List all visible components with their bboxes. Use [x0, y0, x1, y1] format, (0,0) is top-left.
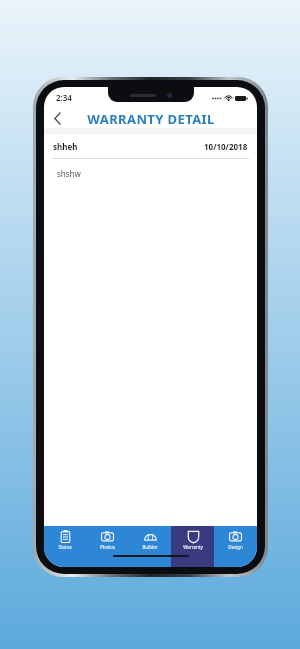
button[interactable]: Back [44, 108, 70, 128]
staticText: Warranty [183, 544, 203, 550]
button[interactable]: Builder [128, 526, 171, 553]
button[interactable]: Warranty [171, 526, 214, 553]
staticText: 2:34 [56, 92, 72, 103]
staticText: shheh [53, 141, 78, 152]
staticText: Design [228, 544, 243, 550]
staticText: Status [58, 544, 72, 550]
staticText: Photos [100, 544, 115, 550]
staticText: WARRANTY DETAIL [87, 110, 215, 128]
button[interactable]: Photos [86, 526, 128, 553]
staticText: 10/10/2018 [204, 141, 248, 152]
staticText: Builder [142, 544, 158, 550]
staticText: shshw [57, 168, 81, 179]
button[interactable]: Status [44, 526, 86, 553]
button[interactable]: Design [214, 526, 257, 553]
